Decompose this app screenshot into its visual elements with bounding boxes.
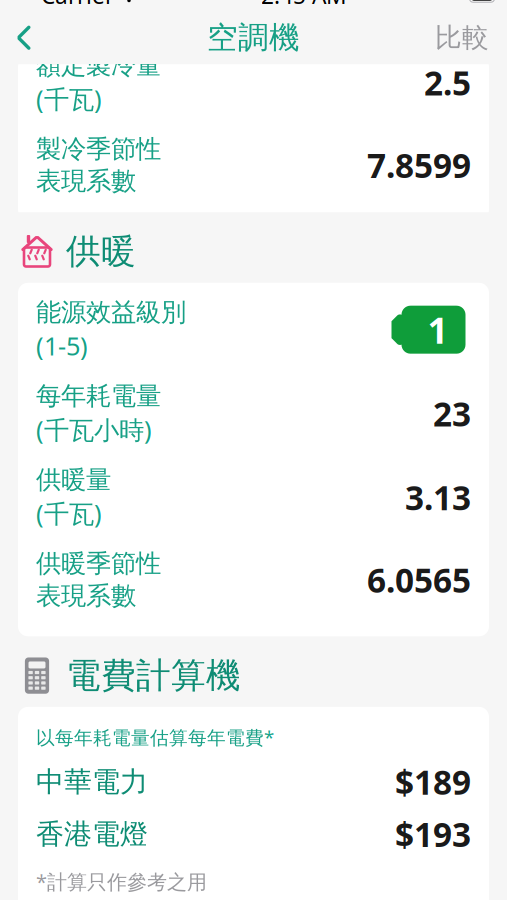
staticText: 額定製冷量: [36, 50, 161, 81]
staticText: *計算只作參考之用: [36, 868, 207, 895]
staticText: 空調機: [207, 19, 300, 57]
staticText: 香港電燈: [36, 817, 148, 851]
staticText: 電費計算機: [66, 654, 241, 697]
staticText: 比較: [435, 21, 489, 54]
button[interactable]: 比較: [417, 11, 507, 64]
staticText: 3.13: [405, 475, 471, 519]
staticText: 23: [433, 391, 471, 436]
staticText: 2:45 AM: [261, 0, 347, 10]
staticText: 中華電力: [36, 765, 148, 799]
staticText: $193: [395, 812, 471, 856]
button[interactable]: Back: [0, 13, 48, 63]
staticText: 能源效益級別: [36, 297, 186, 328]
staticText: 6.0565: [367, 558, 471, 602]
staticText: 供暖季節性: [36, 548, 161, 579]
staticText: 供暖量: [36, 464, 111, 495]
staticText: (千瓦): [36, 496, 102, 530]
staticText: 2.5: [424, 60, 471, 105]
staticText: 供暖: [66, 230, 136, 273]
staticText: 1: [427, 306, 448, 354]
staticText: $189: [395, 760, 471, 804]
staticText: Carrier: [41, 0, 114, 10]
staticText: 以每年耗電量估算每年電費*: [36, 725, 274, 750]
staticText: 表現系數: [36, 166, 136, 197]
staticText: 表現系數: [36, 580, 136, 611]
staticText: 7.8599: [367, 143, 471, 187]
staticText: 製冷季節性: [36, 133, 161, 165]
staticText: (千瓦): [36, 82, 102, 115]
staticText: (千瓦小時): [36, 413, 152, 446]
staticText: (1-5): [36, 329, 88, 362]
staticText: 每年耗電量: [36, 381, 161, 412]
